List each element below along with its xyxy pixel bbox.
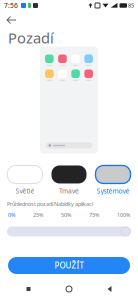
button[interactable]: Tmavé [51, 165, 86, 195]
staticText: Systémové [96, 186, 129, 195]
button[interactable]: POUŽÍT [8, 257, 130, 274]
button[interactable]: Zpět [0, 11, 24, 29]
button[interactable]: Nedávné [16, 283, 40, 295]
staticText: Světlé [15, 186, 34, 195]
staticText: Pozadí [8, 28, 54, 47]
button[interactable]: Domů [57, 283, 81, 295]
button[interactable]: Světlé [7, 165, 42, 195]
staticText: 0% [8, 211, 15, 218]
button[interactable]: Systémové [95, 165, 130, 195]
staticText: 75% [89, 211, 99, 218]
staticText: 7:56 [4, 1, 18, 10]
staticText: Tmavé [59, 186, 79, 195]
staticText: Průhlednost pozadí Nabídky aplikací [7, 200, 93, 207]
staticText: 25% [33, 211, 43, 218]
staticText: 100% [117, 211, 130, 218]
staticText: 50% [61, 211, 71, 218]
staticText: POUŽÍT [54, 260, 83, 271]
staticText: 85 [128, 2, 134, 9]
button[interactable]: Zpět [97, 283, 121, 295]
